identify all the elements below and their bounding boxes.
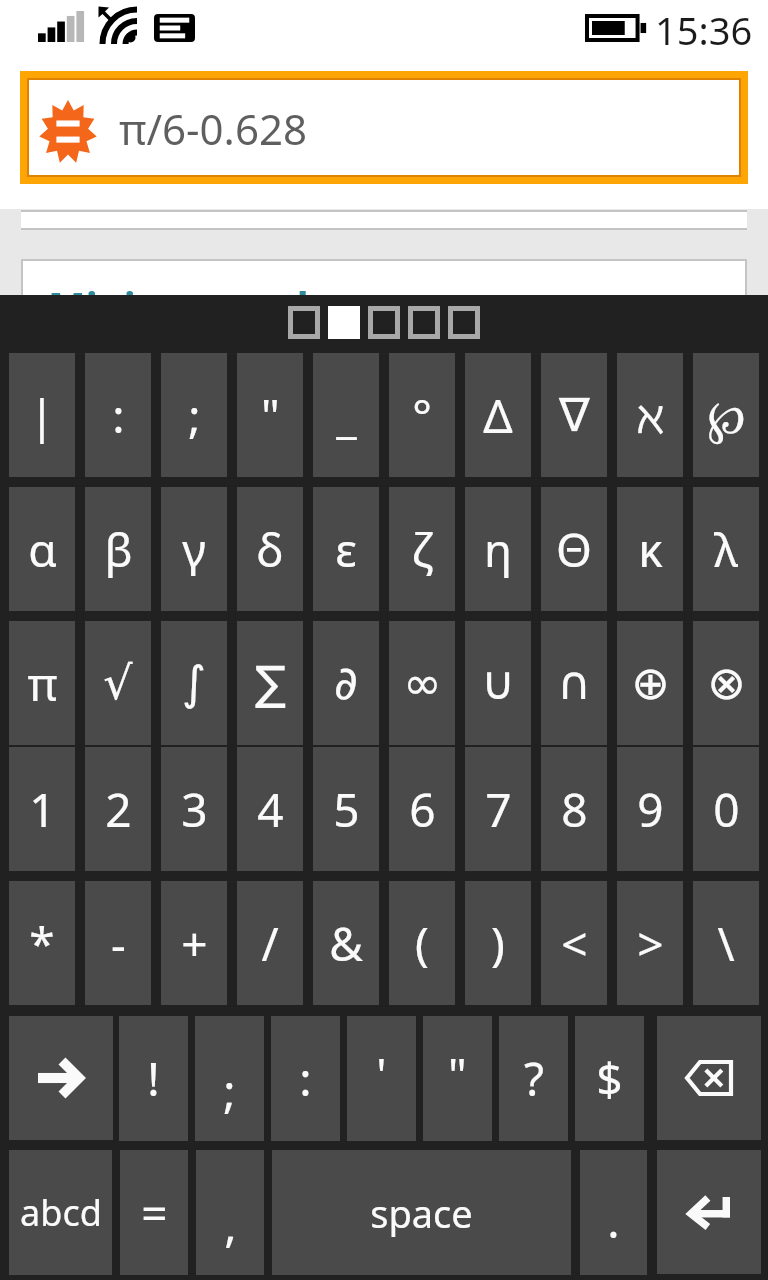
staticText: 9 bbox=[637, 778, 664, 841]
button[interactable]: ∩ bbox=[541, 621, 607, 745]
button[interactable]: ∇ bbox=[541, 353, 607, 477]
button[interactable]: ℵ bbox=[617, 353, 683, 477]
button[interactable]: ⊗ bbox=[693, 621, 759, 745]
staticText: 8 bbox=[561, 778, 588, 841]
button[interactable]: & bbox=[313, 881, 379, 1005]
button[interactable]: λ bbox=[693, 487, 759, 611]
staticText: ∞ bbox=[403, 656, 442, 710]
button[interactable]: Backspace bbox=[657, 1016, 761, 1140]
staticText: ! bbox=[147, 1047, 160, 1110]
staticText: _ bbox=[336, 384, 357, 447]
staticText: : bbox=[299, 1047, 312, 1110]
button[interactable]: , bbox=[196, 1150, 264, 1275]
button[interactable]: ° bbox=[389, 353, 455, 477]
staticText: ε bbox=[335, 518, 357, 581]
button[interactable]: ⊕ bbox=[617, 621, 683, 745]
button[interactable]: : bbox=[271, 1016, 340, 1141]
staticText: & bbox=[329, 912, 363, 975]
button[interactable]: 6 bbox=[389, 747, 455, 871]
button[interactable]: < bbox=[541, 881, 607, 1005]
button[interactable]: / bbox=[237, 881, 303, 1005]
button[interactable]: ∑ bbox=[237, 621, 303, 745]
button[interactable]: | bbox=[9, 353, 75, 477]
button[interactable]: \ bbox=[693, 881, 759, 1005]
button[interactable]: 9 bbox=[617, 747, 683, 871]
button[interactable]: δ bbox=[237, 487, 303, 611]
button[interactable]: ∫ bbox=[161, 621, 227, 745]
button[interactable]: Δ bbox=[465, 353, 531, 477]
button[interactable]: π/6-0.628 bbox=[29, 80, 739, 175]
button[interactable]: . bbox=[580, 1150, 647, 1275]
button[interactable]: 4 bbox=[237, 747, 303, 871]
button[interactable]: 5 bbox=[313, 747, 379, 871]
staticText: space bbox=[370, 1187, 473, 1239]
button[interactable]: ε bbox=[313, 487, 379, 611]
staticText: ∩ bbox=[557, 656, 591, 710]
button[interactable]: 2 bbox=[85, 747, 151, 871]
staticText: ? bbox=[524, 1047, 544, 1110]
staticText: γ bbox=[182, 518, 206, 581]
button[interactable]: ? bbox=[499, 1016, 568, 1141]
staticText: < bbox=[561, 912, 588, 975]
staticText: : bbox=[112, 384, 125, 447]
button[interactable]: ∞ bbox=[389, 621, 455, 745]
button[interactable]: β bbox=[85, 487, 151, 611]
button[interactable]: η bbox=[465, 487, 531, 611]
staticText: √ bbox=[103, 656, 133, 710]
button[interactable]: space bbox=[272, 1150, 571, 1275]
button[interactable]: κ bbox=[617, 487, 683, 611]
staticText: 1 bbox=[29, 778, 56, 841]
staticText: ∫ bbox=[182, 656, 206, 710]
button[interactable]: * bbox=[9, 881, 75, 1005]
button[interactable]: 1 bbox=[9, 747, 75, 871]
button[interactable]: ( bbox=[389, 881, 455, 1005]
button[interactable]: ; bbox=[161, 353, 227, 477]
button[interactable]: ζ bbox=[389, 487, 455, 611]
button[interactable]: α bbox=[9, 487, 75, 611]
button[interactable]: 7 bbox=[465, 747, 531, 871]
button[interactable]: π bbox=[9, 621, 75, 745]
button[interactable]: + bbox=[161, 881, 227, 1005]
staticText: ∪ bbox=[481, 656, 515, 710]
staticText: $ bbox=[596, 1047, 623, 1110]
button[interactable]: = bbox=[120, 1150, 188, 1275]
button[interactable]: 3 bbox=[161, 747, 227, 871]
button[interactable]: 0 bbox=[693, 747, 759, 871]
button[interactable]: " bbox=[237, 353, 303, 477]
button[interactable]: ∪ bbox=[465, 621, 531, 745]
staticText: δ bbox=[256, 518, 284, 581]
button[interactable]: ℘ bbox=[693, 353, 759, 477]
staticText: ' bbox=[376, 1043, 387, 1106]
button[interactable]: " bbox=[423, 1016, 492, 1141]
button[interactable]: ! bbox=[119, 1016, 188, 1141]
button[interactable]: 8 bbox=[541, 747, 607, 871]
staticText: β bbox=[104, 518, 133, 581]
button[interactable]: √ bbox=[85, 621, 151, 745]
button[interactable]: ∂ bbox=[313, 621, 379, 745]
button[interactable]: Θ bbox=[541, 487, 607, 611]
staticText: 7 bbox=[485, 778, 512, 841]
button[interactable]: _ bbox=[313, 353, 379, 477]
staticText: α bbox=[28, 518, 57, 581]
button[interactable]: : bbox=[85, 353, 151, 477]
staticText: / bbox=[261, 912, 279, 975]
button[interactable]: abcd bbox=[9, 1150, 112, 1275]
button[interactable]: γ bbox=[161, 487, 227, 611]
button[interactable]: > bbox=[617, 881, 683, 1005]
button[interactable]: Tab bbox=[9, 1016, 113, 1140]
button[interactable]: ; bbox=[195, 1016, 264, 1141]
button[interactable]: - bbox=[85, 881, 151, 1005]
button[interactable]: Enter bbox=[657, 1150, 761, 1274]
staticText: ℵ bbox=[636, 384, 665, 447]
button[interactable]: ' bbox=[347, 1016, 416, 1141]
button[interactable]: $ bbox=[575, 1016, 644, 1141]
button[interactable]: ) bbox=[465, 881, 531, 1005]
staticText: ; bbox=[223, 1059, 236, 1122]
staticText: > bbox=[637, 912, 664, 975]
staticText: ∇ bbox=[559, 388, 590, 442]
